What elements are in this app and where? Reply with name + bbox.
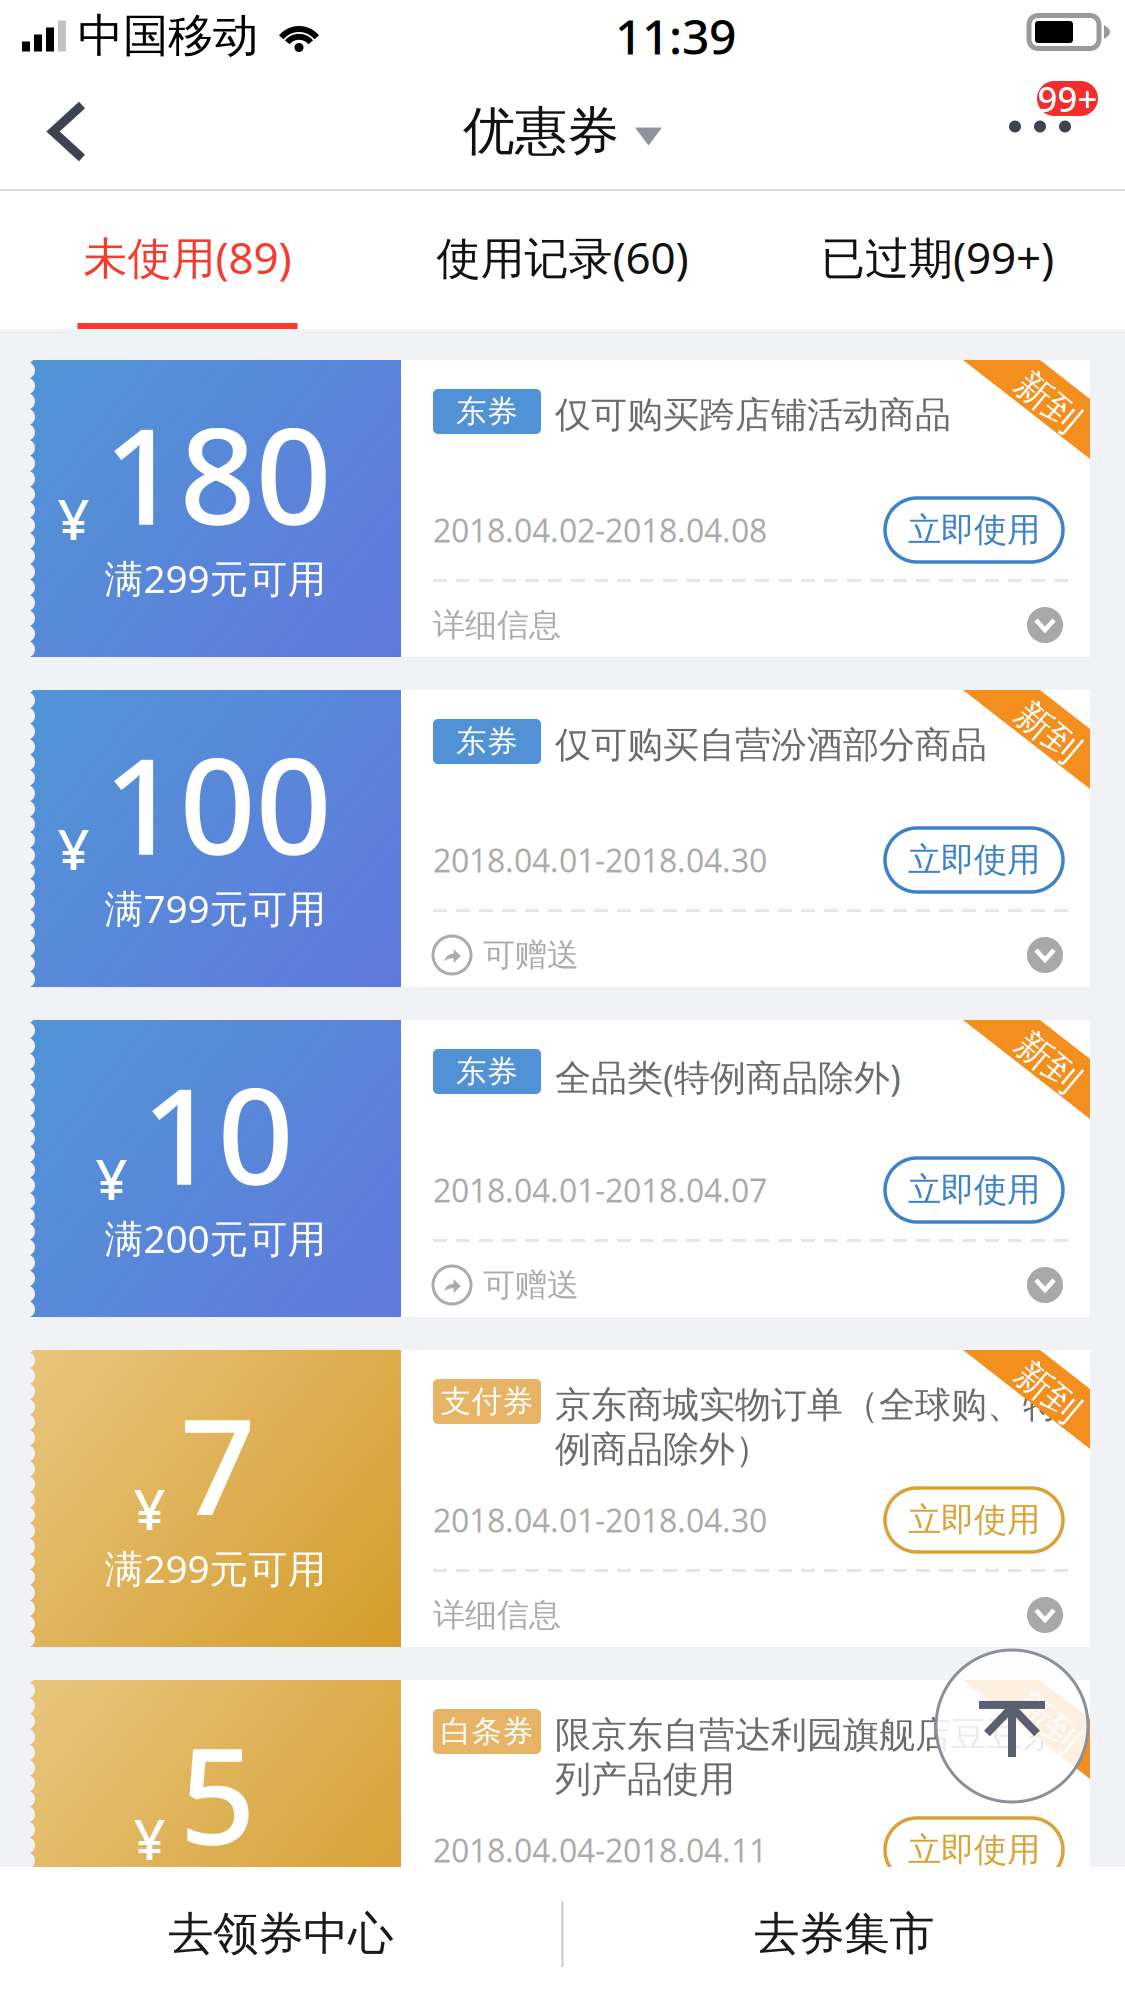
button[interactable]: Expand coupon details: [1027, 1597, 1063, 1633]
button[interactable]: More options: [978, 72, 1102, 191]
staticText: 白条券: [440, 1713, 533, 1750]
button[interactable]: Expand coupon details: [1027, 607, 1063, 643]
button[interactable]: 立即使用: [885, 498, 1063, 562]
staticText: 10: [141, 1044, 293, 1222]
button[interactable]: 立即使用: [885, 828, 1063, 892]
button[interactable]: Back: [0, 75, 122, 188]
staticText: 新到: [1012, 380, 1084, 424]
staticText: 立即使用: [908, 1169, 1040, 1210]
staticText: 已过期(99+): [821, 228, 1054, 286]
button[interactable]: 去领券中心: [0, 1867, 561, 2001]
staticText: 满299元可用: [104, 552, 326, 604]
staticText: ¥: [133, 1801, 165, 1876]
staticText: 可赠送: [483, 1265, 579, 1305]
staticText: 仅可购买跨店铺活动商品: [555, 393, 951, 437]
staticText: 去券集市: [754, 1906, 934, 1962]
staticText: 立即使用: [908, 839, 1040, 880]
staticText: 180: [103, 384, 331, 562]
staticText: 2018.04.04-2018.04.11: [433, 1829, 767, 1871]
staticText: 京东商城实物订单（全球购、特例商品除外）: [555, 1383, 1059, 1471]
staticText: 满99元可用: [115, 1872, 315, 1924]
staticText: 5: [179, 1704, 255, 1882]
staticText: 立即使用: [908, 509, 1040, 550]
staticText: 100: [103, 714, 331, 892]
staticText: 使用记录(60): [436, 228, 688, 286]
staticText: 99+: [1037, 75, 1097, 121]
staticText: 11:39: [615, 4, 736, 68]
staticText: 满799元可用: [104, 882, 326, 934]
button[interactable]: Expand coupon details: [1027, 1267, 1063, 1303]
staticText: 可赠送: [483, 935, 579, 975]
staticText: 中国移动: [78, 8, 258, 64]
staticText: ¥: [95, 1141, 127, 1216]
staticText: 东券: [456, 393, 518, 430]
button[interactable]: 立即使用: [885, 1158, 1063, 1222]
staticText: 满200元可用: [104, 1212, 326, 1264]
staticText: 2018.04.01-2018.04.30: [433, 839, 767, 881]
staticText: 新到: [1012, 1700, 1084, 1744]
button[interactable]: 立即使用: [885, 1488, 1063, 1552]
staticText: 仅可购买自营汾酒部分商品: [555, 723, 987, 767]
staticText: 优惠券: [463, 100, 619, 163]
staticText: 2018.04.01-2018.04.30: [433, 1499, 767, 1541]
staticText: 未使用(89): [83, 228, 291, 286]
staticText: 东券: [456, 723, 518, 760]
staticText: ¥: [133, 1471, 165, 1546]
staticText: 立即使用: [908, 1829, 1040, 1870]
staticText: 限京东自营达利园旗舰店豆豆系列产品使用: [555, 1713, 1059, 1801]
staticText: 详细信息: [433, 605, 561, 645]
button[interactable]: 使用记录(60): [375, 191, 750, 329]
staticText: 支付券: [440, 1383, 533, 1420]
button[interactable]: Expand coupon details: [1027, 937, 1063, 973]
staticText: 详细信息: [433, 1595, 561, 1635]
staticText: 2018.04.02-2018.04.08: [433, 509, 767, 551]
staticText: 满299元可用: [104, 1542, 326, 1594]
button[interactable]: 立即使用: [885, 1818, 1063, 1882]
staticText: 去领券中心: [168, 1906, 393, 1962]
staticText: 新到: [1012, 1040, 1084, 1084]
staticText: 新到: [1012, 1370, 1084, 1414]
staticText: 立即使用: [908, 1499, 1040, 1540]
button[interactable]: Scroll to top: [936, 1650, 1088, 1802]
staticText: ¥: [57, 481, 89, 556]
staticText: 7: [179, 1374, 255, 1552]
staticText: 新到: [1012, 710, 1084, 754]
button[interactable]: 未使用(89): [0, 191, 375, 329]
staticText: 全品类(特例商品除外): [555, 1053, 901, 1101]
staticText: 东券: [456, 1053, 518, 1090]
staticText: ¥: [57, 811, 89, 886]
button[interactable]: 去券集市: [563, 1867, 1125, 2001]
staticText: 2018.04.01-2018.04.07: [433, 1169, 767, 1211]
button[interactable]: 已过期(99+): [750, 191, 1125, 329]
